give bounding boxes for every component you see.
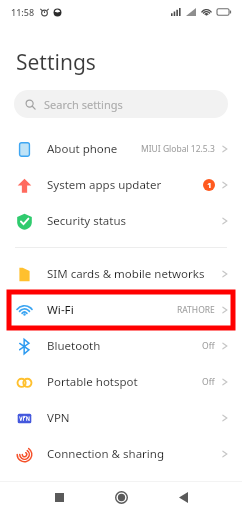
button[interactable]: VPN: [0, 400, 242, 436]
button[interactable]: Bluetooth: [0, 328, 242, 364]
staticText: Security status: [47, 213, 127, 229]
staticText: 11:58: [11, 6, 35, 18]
staticText: Off: [202, 376, 215, 388]
staticText: Search settings: [44, 97, 123, 112]
button[interactable]: Security status: [0, 203, 242, 239]
staticText: VPN: [47, 410, 70, 426]
button[interactable]: SIM cards & mobile networks: [0, 256, 242, 292]
staticText: Bluetooth: [47, 338, 101, 354]
staticText: Settings: [16, 48, 96, 77]
staticText: 1: [207, 180, 212, 190]
button[interactable]: Portable hotspot: [0, 364, 242, 400]
staticText: SIM cards & mobile networks: [47, 266, 205, 282]
staticText: Wi-Fi: [47, 302, 74, 318]
staticText: MIUI Global 12.5.3: [141, 143, 215, 155]
staticText: RATHORE: [177, 304, 215, 316]
button[interactable]: Recents: [28, 482, 90, 512]
staticText: Off: [202, 340, 215, 352]
button[interactable]: Home: [90, 482, 152, 512]
button[interactable]: Connection & sharing: [0, 436, 242, 472]
staticText: System apps updater: [47, 177, 162, 193]
staticText: About phone: [47, 141, 118, 157]
button[interactable]: System apps updater: [0, 167, 242, 203]
button[interactable]: About phone: [0, 131, 242, 167]
staticText: Connection & sharing: [47, 446, 164, 462]
button[interactable]: Wi-Fi: [0, 292, 242, 328]
button[interactable]: Back: [152, 482, 214, 512]
button[interactable]: Search settings: [14, 90, 228, 118]
staticText: Portable hotspot: [47, 374, 138, 390]
